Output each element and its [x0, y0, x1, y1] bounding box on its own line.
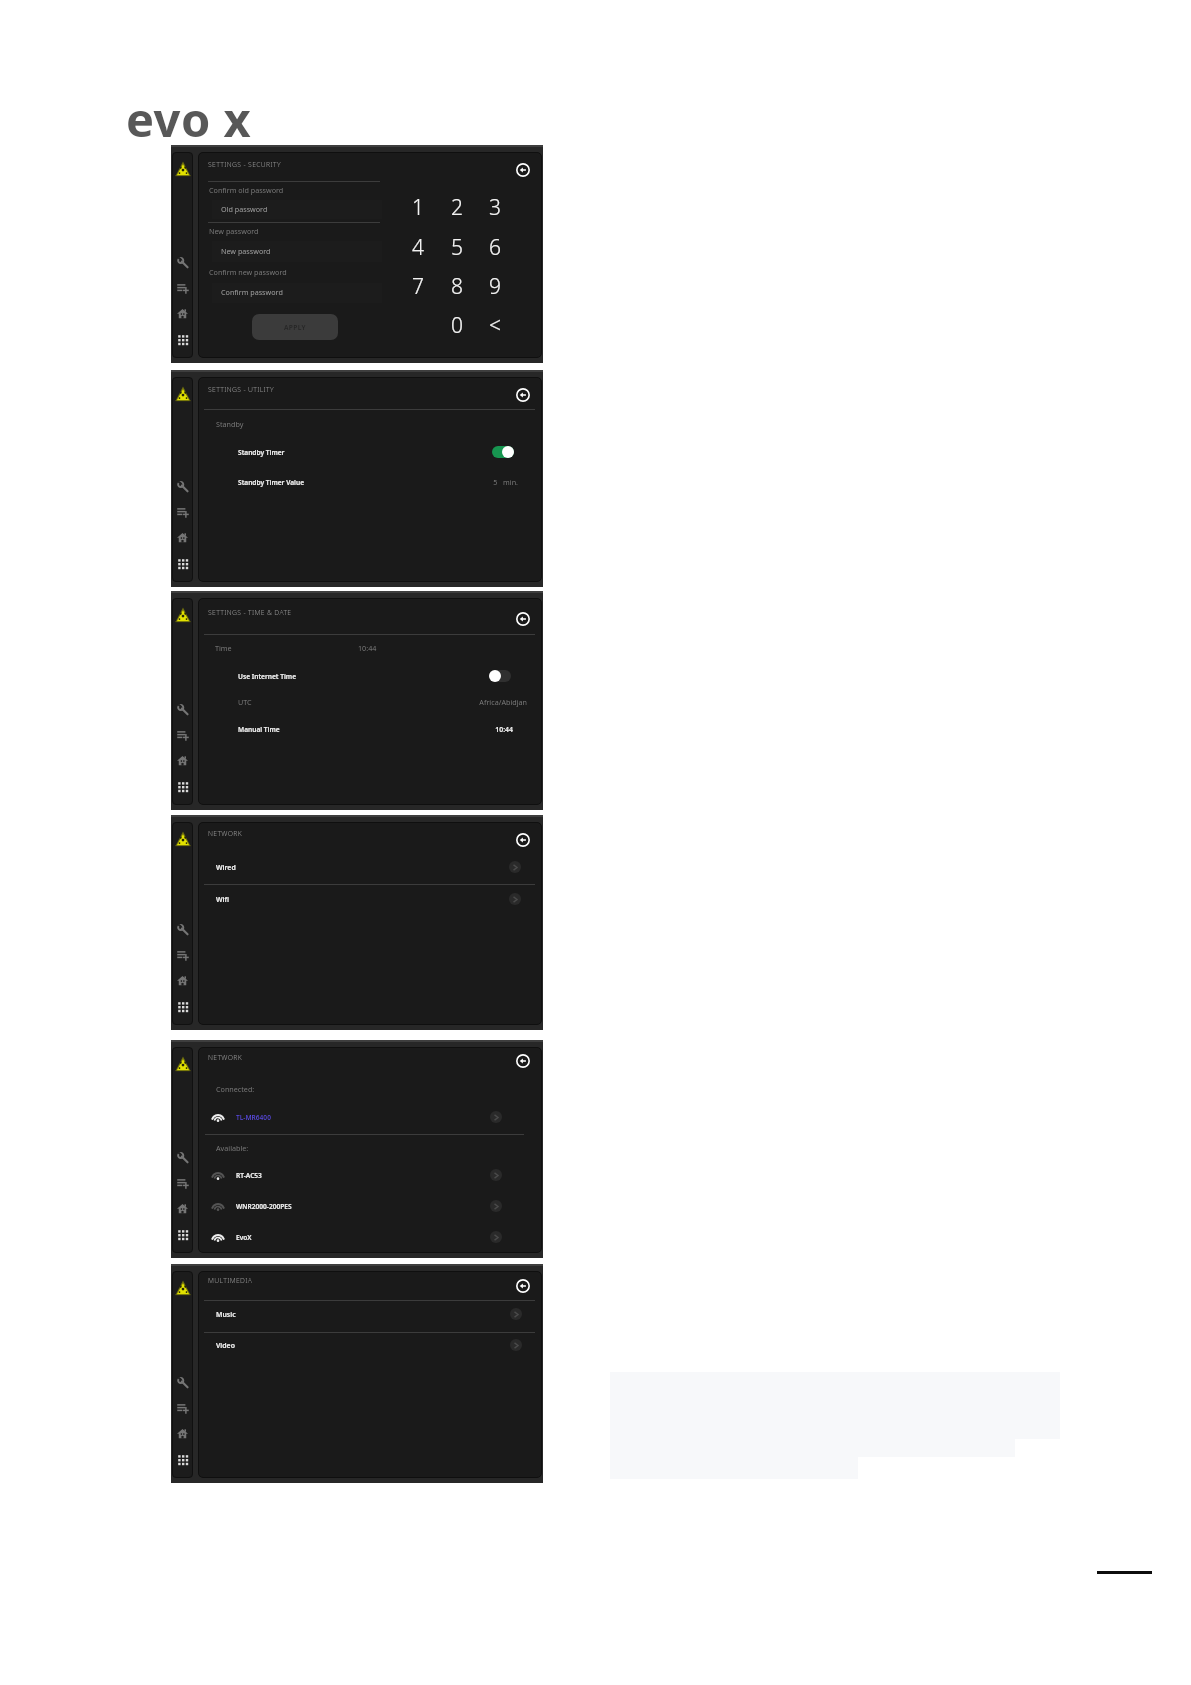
button[interactable]: Tools: [177, 1377, 189, 1389]
button[interactable]: Open: [509, 893, 521, 905]
button[interactable]: TL-MR6400: [204, 1103, 535, 1131]
button[interactable]: Warning: [175, 385, 191, 401]
button[interactable]: 0: [438, 305, 476, 345]
button[interactable]: Playlist: [177, 506, 189, 518]
button[interactable]: Tools: [177, 704, 189, 716]
button[interactable]: APPLY: [252, 314, 338, 340]
staticText: Time: [215, 643, 415, 653]
button[interactable]: Playlist: [177, 1177, 189, 1189]
button[interactable]: Use Internet Time: [204, 666, 535, 686]
button[interactable]: 4: [399, 227, 437, 267]
button[interactable]: Wired: [204, 852, 535, 882]
button[interactable]: Home: [177, 1428, 188, 1439]
button[interactable]: Manual Time: [204, 720, 535, 738]
button[interactable]: Back: [516, 833, 530, 847]
button[interactable]: Home: [177, 975, 188, 986]
button[interactable]: Back: [516, 1054, 530, 1068]
button[interactable]: Home: [177, 755, 188, 766]
staticText: APPLY: [284, 323, 306, 332]
staticText: 6: [489, 233, 501, 262]
button[interactable]: Old password: [212, 200, 382, 219]
button[interactable]: 9: [476, 266, 514, 306]
button[interactable]: Apps: [178, 1002, 188, 1012]
button[interactable]: Open: [490, 1200, 502, 1212]
staticText: Standby: [216, 419, 416, 429]
button[interactable]: Warning: [175, 160, 191, 176]
staticText: 10:44: [433, 725, 513, 734]
button[interactable]: Apps: [178, 559, 188, 569]
button[interactable]: Confirm password: [212, 283, 382, 303]
button[interactable]: Home: [177, 532, 188, 543]
staticText: Wired: [216, 863, 416, 872]
button[interactable]: Back: [516, 1279, 530, 1293]
staticText: MULTIMEDIA: [208, 1276, 408, 1285]
staticText: Use Internet Time: [238, 672, 438, 681]
button[interactable]: Tools: [177, 481, 189, 493]
button[interactable]: Open: [509, 861, 521, 873]
button[interactable]: Apps: [178, 335, 188, 345]
staticText: 9: [489, 272, 501, 301]
staticText: evo x: [126, 87, 426, 151]
button[interactable]: Wifi: [204, 886, 535, 914]
staticText: 5: [451, 233, 463, 262]
button[interactable]: Toggle: [492, 446, 514, 458]
button[interactable]: Open: [510, 1339, 522, 1351]
staticText: Standby Timer Value: [238, 478, 438, 487]
button[interactable]: Open: [490, 1111, 502, 1123]
button[interactable]: Apps: [178, 782, 188, 792]
staticText: SETTINGS - UTILITY: [208, 385, 408, 394]
button[interactable]: 7: [399, 266, 437, 306]
button[interactable]: WNR2000-200PES: [204, 1192, 535, 1220]
staticText: 10:44: [358, 643, 558, 653]
button[interactable]: RT-AC53: [204, 1161, 535, 1189]
staticText: UTC: [238, 697, 438, 707]
button[interactable]: Apps: [178, 1230, 188, 1240]
button[interactable]: Apps: [178, 1455, 188, 1465]
staticText: 2: [451, 193, 463, 222]
button[interactable]: New password: [212, 241, 382, 262]
button[interactable]: Warning: [175, 1279, 191, 1295]
button[interactable]: Open: [510, 1308, 522, 1320]
button[interactable]: 3: [476, 187, 514, 227]
button[interactable]: UTC: [204, 693, 535, 711]
button[interactable]: 2: [438, 187, 476, 227]
button[interactable]: EvoX: [204, 1223, 535, 1251]
button[interactable]: Back: [516, 612, 530, 626]
button[interactable]: Tools: [177, 257, 189, 269]
button[interactable]: Music: [204, 1301, 535, 1331]
button[interactable]: 8: [438, 266, 476, 306]
staticText: Available:: [216, 1143, 416, 1153]
staticText: Connected:: [216, 1084, 416, 1094]
button[interactable]: Playlist: [177, 949, 189, 961]
button[interactable]: Video: [204, 1333, 535, 1361]
button[interactable]: 6: [476, 227, 514, 267]
button[interactable]: Warning: [175, 830, 191, 846]
staticText: New password: [221, 246, 341, 256]
button[interactable]: Warning: [175, 1055, 191, 1071]
button[interactable]: Back: [516, 388, 530, 402]
button[interactable]: Standby Timer Value: [204, 472, 535, 492]
staticText: RT-AC53: [236, 1171, 436, 1180]
staticText: NETWORK: [208, 829, 408, 838]
button[interactable]: Home: [177, 308, 188, 319]
button[interactable]: 5: [438, 227, 476, 267]
staticText: 5 min.: [438, 477, 518, 487]
staticText: Standby Timer: [238, 448, 438, 457]
button[interactable]: 1: [399, 187, 437, 227]
button[interactable]: Playlist: [177, 1402, 189, 1414]
button[interactable]: Open: [490, 1231, 502, 1243]
button[interactable]: Tools: [177, 1152, 189, 1164]
button[interactable]: Standby Timer: [204, 442, 535, 462]
staticText: <: [489, 311, 501, 340]
button[interactable]: Toggle: [489, 670, 511, 682]
button[interactable]: Tools: [177, 924, 189, 936]
button[interactable]: Back: [516, 163, 530, 177]
staticText: Manual Time: [238, 725, 438, 734]
staticText: Confirm new password: [209, 267, 409, 277]
button[interactable]: Playlist: [177, 729, 189, 741]
button[interactable]: Playlist: [177, 282, 189, 294]
button[interactable]: Home: [177, 1203, 188, 1214]
button[interactable]: Warning: [175, 606, 191, 622]
button[interactable]: <: [476, 305, 514, 345]
button[interactable]: Open: [490, 1169, 502, 1181]
